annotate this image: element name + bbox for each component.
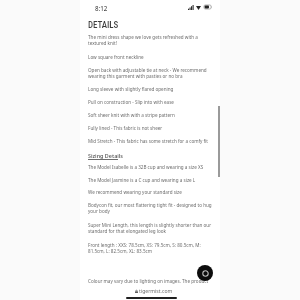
staticText: Pull on construction - Slip into with ea… [88, 99, 212, 105]
staticText: tigermist.com [139, 288, 173, 295]
staticText: Super Mini Length, this length is slight… [88, 222, 212, 235]
staticText: The Model Jasmine is a C cup and wearing… [88, 177, 212, 183]
staticText: The mini dress shape we love gets refres… [88, 34, 212, 47]
staticText: Colour may vary due to lighting on image… [88, 278, 212, 284]
staticText: We recommend wearing your standard size [88, 189, 212, 195]
staticText: 8:12 [95, 4, 108, 12]
staticText: The Model Isabelle is a 32B cup and wear… [88, 164, 212, 170]
staticText: Mid Stretch - This fabric has some stret… [88, 138, 212, 144]
staticText: Front length : XXS: 78.5cm, XS: 79.5cm, … [88, 242, 212, 255]
staticText: DETAILS [88, 20, 119, 31]
staticText: Long sleeve with slightly flared opening [88, 86, 212, 92]
staticText: Sizing Details [88, 152, 123, 159]
staticText: Low square front neckline [88, 54, 212, 60]
staticText: Open back with adjustable tie at neck - … [88, 67, 212, 80]
staticText: Bodycon fit, our most flattering tight f… [88, 202, 212, 215]
staticText: Fully lined - This fabric is not sheer [88, 125, 212, 131]
staticText: Soft sheer knit with with a stripe patte… [88, 112, 212, 118]
button[interactable]: Help [197, 265, 213, 281]
